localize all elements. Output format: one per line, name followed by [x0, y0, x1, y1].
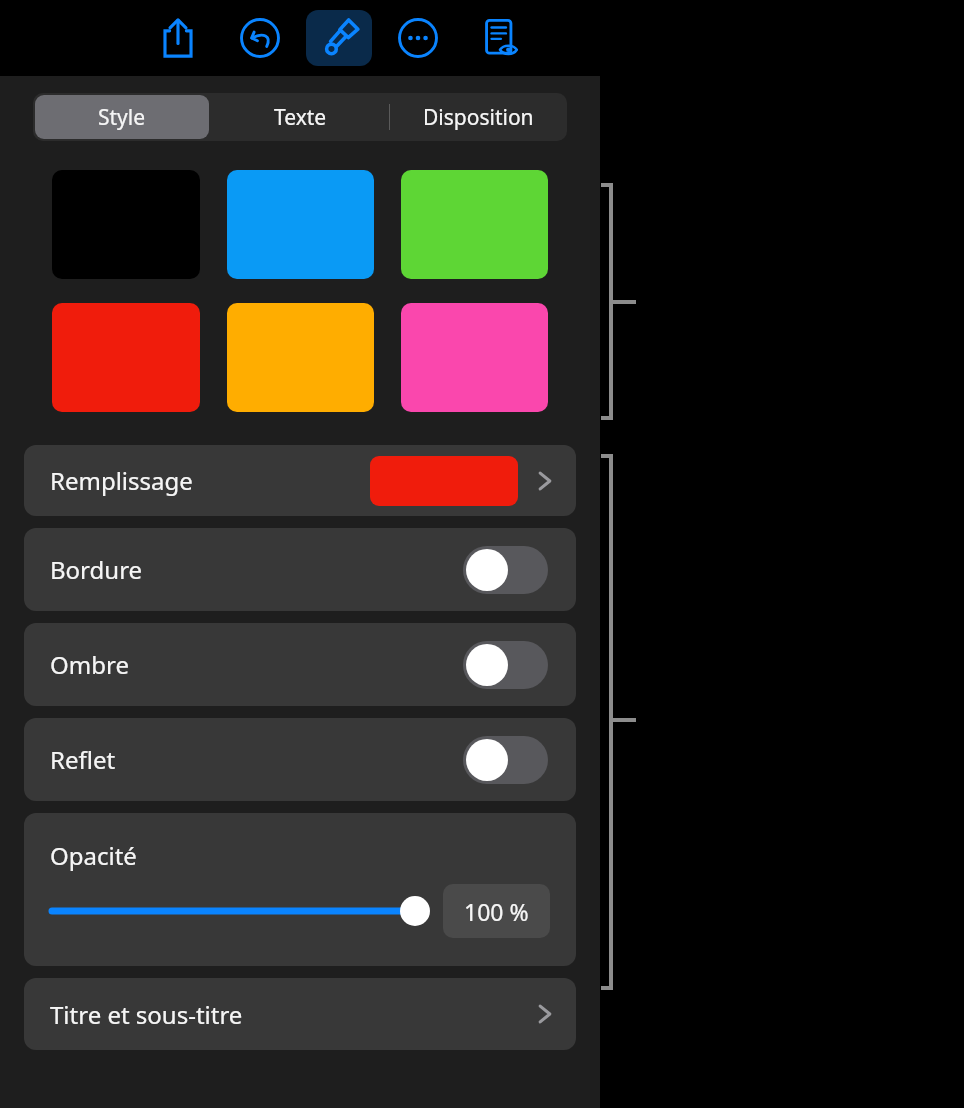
button[interactable]: Bordure — [463, 546, 548, 594]
button[interactable]: Disposition — [389, 93, 567, 141]
button[interactable]: Style — [227, 170, 374, 279]
button[interactable]: Style — [227, 303, 374, 412]
button[interactable]: 100 % — [443, 884, 550, 938]
button[interactable]: Style — [401, 303, 548, 412]
staticText: Remplissage — [50, 464, 193, 497]
button[interactable]: Titre et sous-titre — [24, 978, 576, 1050]
staticText: Reflet — [50, 743, 116, 776]
button[interactable]: Style — [401, 170, 548, 279]
button[interactable]: Reflet — [24, 718, 576, 801]
staticText: Bordure — [50, 553, 143, 586]
staticText: 100 % — [464, 896, 529, 927]
button[interactable]: Share — [148, 10, 208, 66]
button[interactable]: Bordure — [24, 528, 576, 611]
button[interactable]: Document options — [470, 10, 530, 66]
staticText: Disposition — [423, 103, 534, 132]
button[interactable]: Remplissage — [24, 445, 576, 516]
staticText: Ombre — [50, 648, 129, 681]
button[interactable]: Opacity slider — [52, 893, 429, 929]
staticText: Opacité — [50, 839, 137, 872]
button[interactable]: Style — [52, 303, 200, 412]
staticText: Titre et sous-titre — [50, 998, 243, 1031]
staticText: Texte — [274, 103, 327, 132]
button[interactable]: Ombre — [463, 641, 548, 689]
button[interactable]: Undo — [230, 10, 290, 66]
button[interactable]: More — [388, 10, 448, 66]
button[interactable]: Ombre — [24, 623, 576, 706]
button[interactable]: Format — [306, 10, 372, 66]
button[interactable]: Style — [35, 95, 209, 139]
staticText: Style — [98, 103, 146, 132]
button[interactable]: Reflet — [463, 736, 548, 784]
button[interactable]: Texte — [211, 93, 389, 141]
